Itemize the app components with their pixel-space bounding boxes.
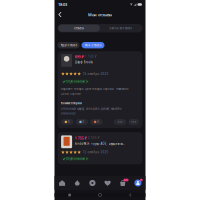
staticText: Баллы за отзывы	[109, 26, 132, 30]
staticText: Мои отзывы	[84, 43, 101, 47]
button[interactable]: Back	[56, 11, 65, 19]
button[interactable]: Reaction	[61, 119, 73, 125]
button[interactable]: Ждут отзыва	[57, 42, 79, 48]
staticText: 1 755 ₽	[74, 135, 86, 141]
button[interactable]: Profile	[130, 176, 145, 190]
button[interactable]: Catalog	[85, 176, 100, 190]
staticText: 0	[82, 120, 84, 124]
staticText: Опубликован	[66, 80, 85, 83]
staticText: 0	[97, 120, 99, 124]
button[interactable]: More	[128, 119, 139, 125]
button[interactable]: Reaction	[90, 119, 103, 125]
button[interactable]: Share	[114, 119, 126, 125]
staticText: 18:03	[58, 2, 67, 7]
staticText: Отзывы	[74, 26, 84, 30]
button[interactable]: Отзывы	[58, 25, 100, 32]
button[interactable]: Мои отзывы	[81, 42, 104, 48]
staticText: 1 140 ₽	[85, 55, 97, 58]
staticText: Комментарии	[61, 101, 82, 105]
staticText: Ждут отзыва	[60, 43, 76, 47]
button[interactable]: Баллы за отзывы	[100, 25, 142, 32]
staticText: Шарф Brooks	[74, 60, 92, 64]
staticText: 2 555 ₽	[88, 136, 100, 140]
staticText: отличное	[61, 112, 75, 115]
staticText: Мои отзывы	[88, 12, 112, 17]
staticText: 899 ₽	[74, 54, 83, 59]
staticText: 16 октября 2025	[83, 72, 109, 76]
staticText: цвета: черный	[61, 92, 81, 95]
button[interactable]: Express	[70, 176, 85, 190]
staticText: Tenda Wi-Fi Роутер AC6, двухдиапаз…	[74, 142, 124, 145]
button[interactable]: Favorites	[100, 176, 115, 190]
staticText: Опубликован	[66, 157, 85, 160]
staticText: Вариант: товара Цвет товара: черный Назв…	[61, 87, 128, 91]
button[interactable]: Home	[54, 176, 70, 190]
staticText: отличный шарф, свое дело делает, качеств…	[61, 107, 122, 110]
staticText: 0	[68, 120, 70, 124]
button[interactable]: Cart	[115, 176, 130, 190]
staticText: 12 октября 2025	[83, 150, 109, 154]
button[interactable]: Reaction	[76, 119, 88, 125]
